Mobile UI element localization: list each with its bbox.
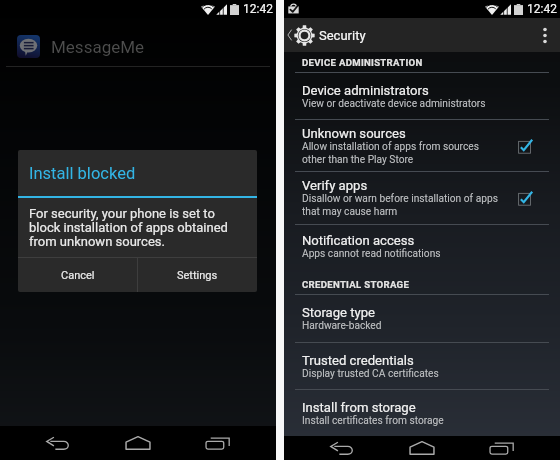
staticText: View or deactivate device administrators [302, 98, 486, 110]
staticText: Security [319, 28, 366, 43]
staticText: Verify apps [302, 178, 368, 193]
staticText: Install from storage [302, 400, 416, 415]
staticText: Notification access [302, 233, 415, 248]
staticText: Trusted credentials [302, 353, 414, 368]
staticText: Apps cannot read notifications [302, 248, 441, 260]
button[interactable]: Cancel [18, 258, 137, 292]
staticText: Install blocked [29, 164, 136, 183]
staticText: Settings [177, 269, 218, 282]
staticText: Allow installation of apps from sources … [302, 141, 479, 166]
button[interactable]: Back [319, 436, 365, 460]
button[interactable]: Storage type [284, 295, 560, 343]
staticText: CREDENTIAL STORAGE [302, 279, 410, 290]
staticText: MessageMe [51, 37, 145, 57]
staticText: Display trusted CA certificates [302, 368, 439, 380]
button[interactable]: Home [399, 436, 445, 460]
staticText: Disallow or warn before installation of … [302, 193, 498, 218]
staticText: 12:42 [243, 2, 273, 16]
staticText: Hardware-backed [302, 320, 382, 332]
button[interactable]: Unknown sources [284, 120, 560, 172]
button[interactable]: Navigate up [284, 18, 315, 52]
staticText: DEVICE ADMINISTRATION [302, 57, 423, 68]
button[interactable]: Trusted credentials [284, 343, 560, 390]
button[interactable]: Verify apps [284, 172, 560, 225]
button[interactable]: Recent apps [479, 436, 525, 460]
button[interactable]: Notification access [284, 225, 560, 268]
staticText: 12:42 [527, 2, 557, 16]
button[interactable]: Home [115, 426, 161, 460]
button[interactable]: More options [530, 18, 560, 52]
staticText: Cancel [61, 269, 95, 282]
staticText: Storage type [302, 305, 376, 320]
staticText: For security, your phone is set to block… [29, 206, 228, 249]
staticText: Device administrators [302, 83, 429, 98]
staticText: Install certificates from storage [302, 415, 444, 427]
button[interactable]: Install from storage [284, 390, 560, 436]
button[interactable]: Recent apps [195, 426, 241, 460]
button[interactable]: Device administrators [284, 73, 560, 120]
button[interactable]: Back [35, 426, 81, 460]
button[interactable]: Settings [138, 258, 257, 292]
staticText: Unknown sources [302, 126, 406, 141]
